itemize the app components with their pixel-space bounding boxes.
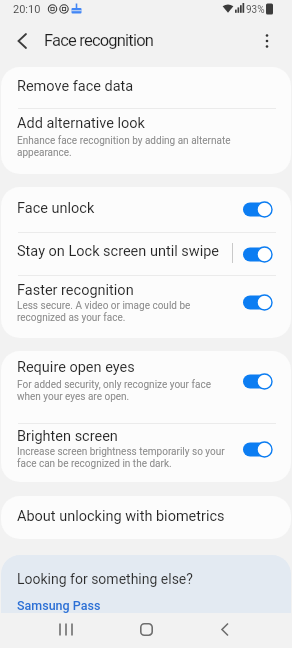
button[interactable] [254, 31, 280, 57]
button[interactable] [132, 615, 160, 643]
staticText: Increase screen brightness temporarily s… [17, 446, 225, 469]
button[interactable] [52, 615, 80, 643]
staticText: Brighten screen [17, 428, 118, 445]
staticText: 93% [246, 4, 265, 16]
staticText: Require open eyes [17, 359, 135, 376]
staticText: Face recognition [44, 31, 154, 50]
button[interactable]: Brighten screen [1, 424, 291, 482]
staticText: Stay on Lock screen until swipe [17, 243, 220, 260]
button[interactable]: Require open eyes [1, 351, 291, 423]
staticText: Less secure. A video or image could be r… [17, 300, 191, 323]
button[interactable]: Add alternative look [1, 109, 291, 174]
button[interactable]: About unlocking with biometrics [1, 496, 291, 539]
button[interactable]: Samsung Pass [17, 598, 101, 613]
staticText: About unlocking with biometrics [17, 508, 225, 525]
button[interactable]: Face unlock [1, 187, 291, 232]
button[interactable] [8, 27, 36, 55]
staticText: Remove face data [17, 78, 134, 95]
button[interactable]: Stay on Lock screen until swipe [1, 233, 291, 275]
button[interactable]: Faster recognition [1, 276, 291, 338]
button[interactable] [211, 615, 239, 643]
staticText: For added security, only recognize your … [17, 379, 211, 402]
staticText: Looking for something else? [17, 571, 193, 587]
staticText: Add alternative look [17, 115, 145, 132]
staticText: Faster recognition [17, 282, 134, 299]
staticText: 20:10 [13, 3, 41, 16]
staticText: Face unlock [17, 200, 95, 217]
button[interactable]: Remove face data [1, 67, 291, 108]
staticText: Enhance face recognition by adding an al… [17, 135, 231, 158]
